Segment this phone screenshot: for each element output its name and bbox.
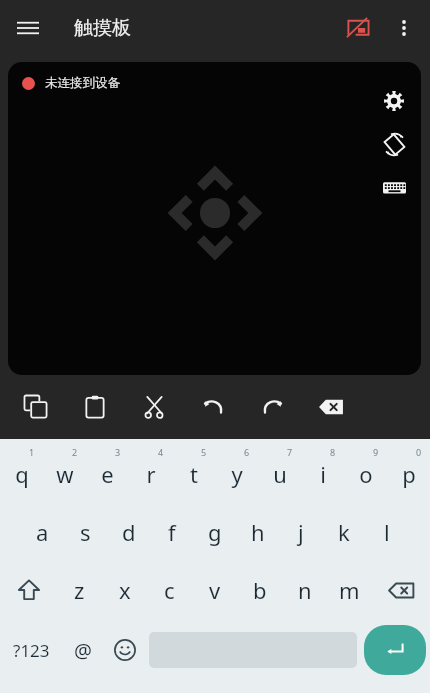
- button[interactable]: m: [327, 561, 372, 619]
- staticText: 9: [373, 446, 379, 458]
- button[interactable]: w: [43, 445, 86, 503]
- button[interactable]: Cast disabled: [334, 4, 382, 52]
- button[interactable]: Touchpad area: [8, 62, 421, 375]
- staticText: e: [101, 459, 114, 489]
- button[interactable]: Undo: [191, 385, 235, 429]
- button[interactable]: b: [237, 561, 282, 619]
- staticText: j: [298, 517, 304, 547]
- button[interactable]: l: [365, 503, 408, 561]
- staticText: a: [36, 517, 49, 547]
- button[interactable]: Delete: [372, 561, 430, 619]
- staticText: t: [190, 459, 198, 489]
- staticText: q: [15, 459, 29, 489]
- staticText: 触摸板: [74, 16, 131, 40]
- button[interactable]: x: [102, 561, 147, 619]
- staticText: 1: [29, 446, 35, 458]
- staticText: i: [320, 459, 326, 489]
- button[interactable]: ?123: [0, 619, 62, 681]
- staticText: s: [80, 517, 91, 547]
- button[interactable]: Redo: [250, 385, 294, 429]
- button[interactable]: Show keyboard: [375, 168, 413, 206]
- staticText: f: [168, 517, 176, 547]
- button[interactable]: n: [282, 561, 327, 619]
- staticText: r: [146, 459, 156, 489]
- button[interactable]: Cut: [132, 385, 176, 429]
- button[interactable]: q: [0, 445, 43, 503]
- staticText: ?123: [13, 639, 50, 662]
- staticText: 3: [115, 446, 121, 458]
- button[interactable]: Shift: [0, 561, 57, 619]
- staticText: g: [208, 517, 222, 547]
- button[interactable]: Enter: [364, 625, 426, 675]
- button[interactable]: More options: [382, 6, 426, 50]
- button[interactable]: y: [215, 445, 258, 503]
- staticText: 2: [72, 446, 78, 458]
- button[interactable]: v: [192, 561, 237, 619]
- staticText: m: [339, 575, 360, 605]
- button[interactable]: Paste: [73, 385, 117, 429]
- button[interactable]: r: [129, 445, 172, 503]
- staticText: 4: [158, 446, 164, 458]
- staticText: 6: [244, 446, 250, 458]
- button[interactable]: d: [107, 503, 150, 561]
- button[interactable]: t: [172, 445, 215, 503]
- staticText: x: [119, 575, 131, 605]
- staticText: y: [231, 459, 243, 489]
- button[interactable]: o: [344, 445, 387, 503]
- staticText: 未连接到设备: [45, 75, 120, 91]
- staticText: u: [273, 459, 287, 489]
- staticText: k: [338, 517, 350, 547]
- staticText: z: [74, 575, 85, 605]
- button[interactable]: Settings: [375, 82, 413, 120]
- staticText: d: [122, 517, 136, 547]
- button[interactable]: g: [193, 503, 236, 561]
- button[interactable]: p: [387, 445, 430, 503]
- button[interactable]: c: [147, 561, 192, 619]
- button[interactable]: Emoji: [104, 619, 146, 681]
- button[interactable]: s: [64, 503, 107, 561]
- button[interactable]: f: [150, 503, 193, 561]
- button[interactable]: Copy: [14, 385, 58, 429]
- button[interactable]: k: [322, 503, 365, 561]
- button[interactable]: j: [279, 503, 322, 561]
- button[interactable]: Open navigation menu: [6, 6, 50, 50]
- button[interactable]: @: [62, 619, 104, 681]
- staticText: h: [251, 517, 265, 547]
- staticText: l: [384, 517, 390, 547]
- button[interactable]: h: [236, 503, 279, 561]
- staticText: @: [74, 637, 92, 664]
- staticText: w: [56, 459, 74, 489]
- staticText: 8: [330, 446, 336, 458]
- staticText: n: [298, 575, 312, 605]
- staticText: 7: [287, 446, 293, 458]
- button[interactable]: Backspace: [309, 385, 353, 429]
- staticText: p: [402, 459, 416, 489]
- staticText: 5: [201, 446, 207, 458]
- staticText: v: [209, 575, 221, 605]
- button[interactable]: z: [57, 561, 102, 619]
- button[interactable]: u: [258, 445, 301, 503]
- staticText: c: [164, 575, 175, 605]
- button[interactable]: i: [301, 445, 344, 503]
- button[interactable]: e: [86, 445, 129, 503]
- staticText: 0: [416, 446, 422, 458]
- staticText: o: [359, 459, 373, 489]
- staticText: b: [253, 575, 267, 605]
- button[interactable]: a: [21, 503, 64, 561]
- button[interactable]: Rotate screen: [375, 125, 413, 163]
